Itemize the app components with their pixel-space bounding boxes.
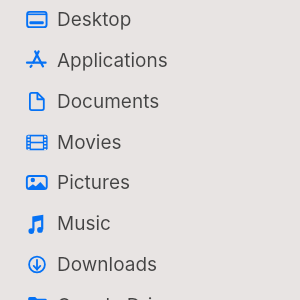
button[interactable]: Google Drive <box>0 285 300 300</box>
staticText: Desktop <box>57 8 132 31</box>
staticText: Documents <box>57 90 160 113</box>
button[interactable]: Music <box>0 203 300 244</box>
staticText: Downloads <box>57 253 158 276</box>
staticText: Google Drive <box>57 294 174 300</box>
button[interactable]: Applications <box>0 40 300 81</box>
button[interactable]: Downloads <box>0 244 300 285</box>
button[interactable]: Desktop <box>0 0 300 40</box>
staticText: Movies <box>57 131 122 154</box>
button[interactable]: Movies <box>0 122 300 163</box>
staticText: Applications <box>57 49 168 72</box>
button[interactable]: Pictures <box>0 162 300 203</box>
staticText: Pictures <box>57 171 130 194</box>
staticText: Music <box>57 212 111 235</box>
button[interactable]: Documents <box>0 81 300 122</box>
